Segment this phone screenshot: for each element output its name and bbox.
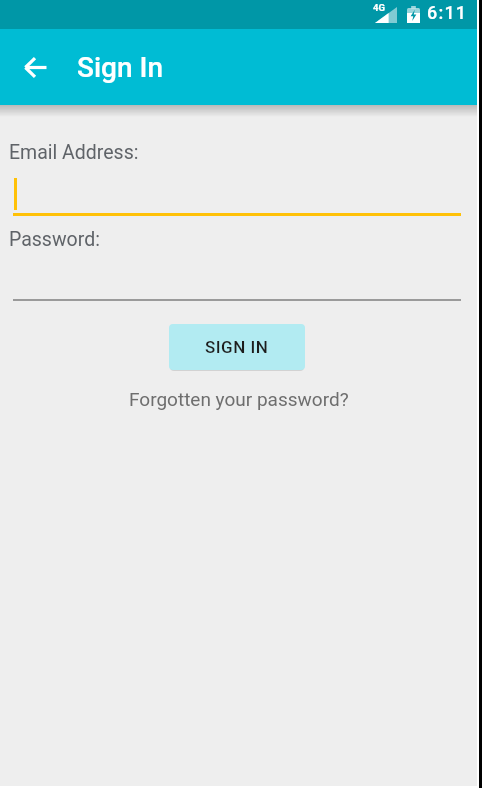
button[interactable] [13, 255, 461, 301]
button[interactable]: SIGN IN [169, 324, 305, 370]
staticText: Email Address: [9, 141, 139, 164]
button[interactable] [24, 55, 48, 79]
staticText: 4G [373, 2, 385, 13]
staticText: Sign In [77, 51, 163, 84]
staticText: 6:11 [427, 2, 468, 23]
staticText: Password: [9, 228, 100, 251]
button[interactable] [13, 170, 461, 216]
staticText: SIGN IN [205, 337, 269, 357]
button[interactable]: Forgotten your password? [129, 388, 349, 410]
